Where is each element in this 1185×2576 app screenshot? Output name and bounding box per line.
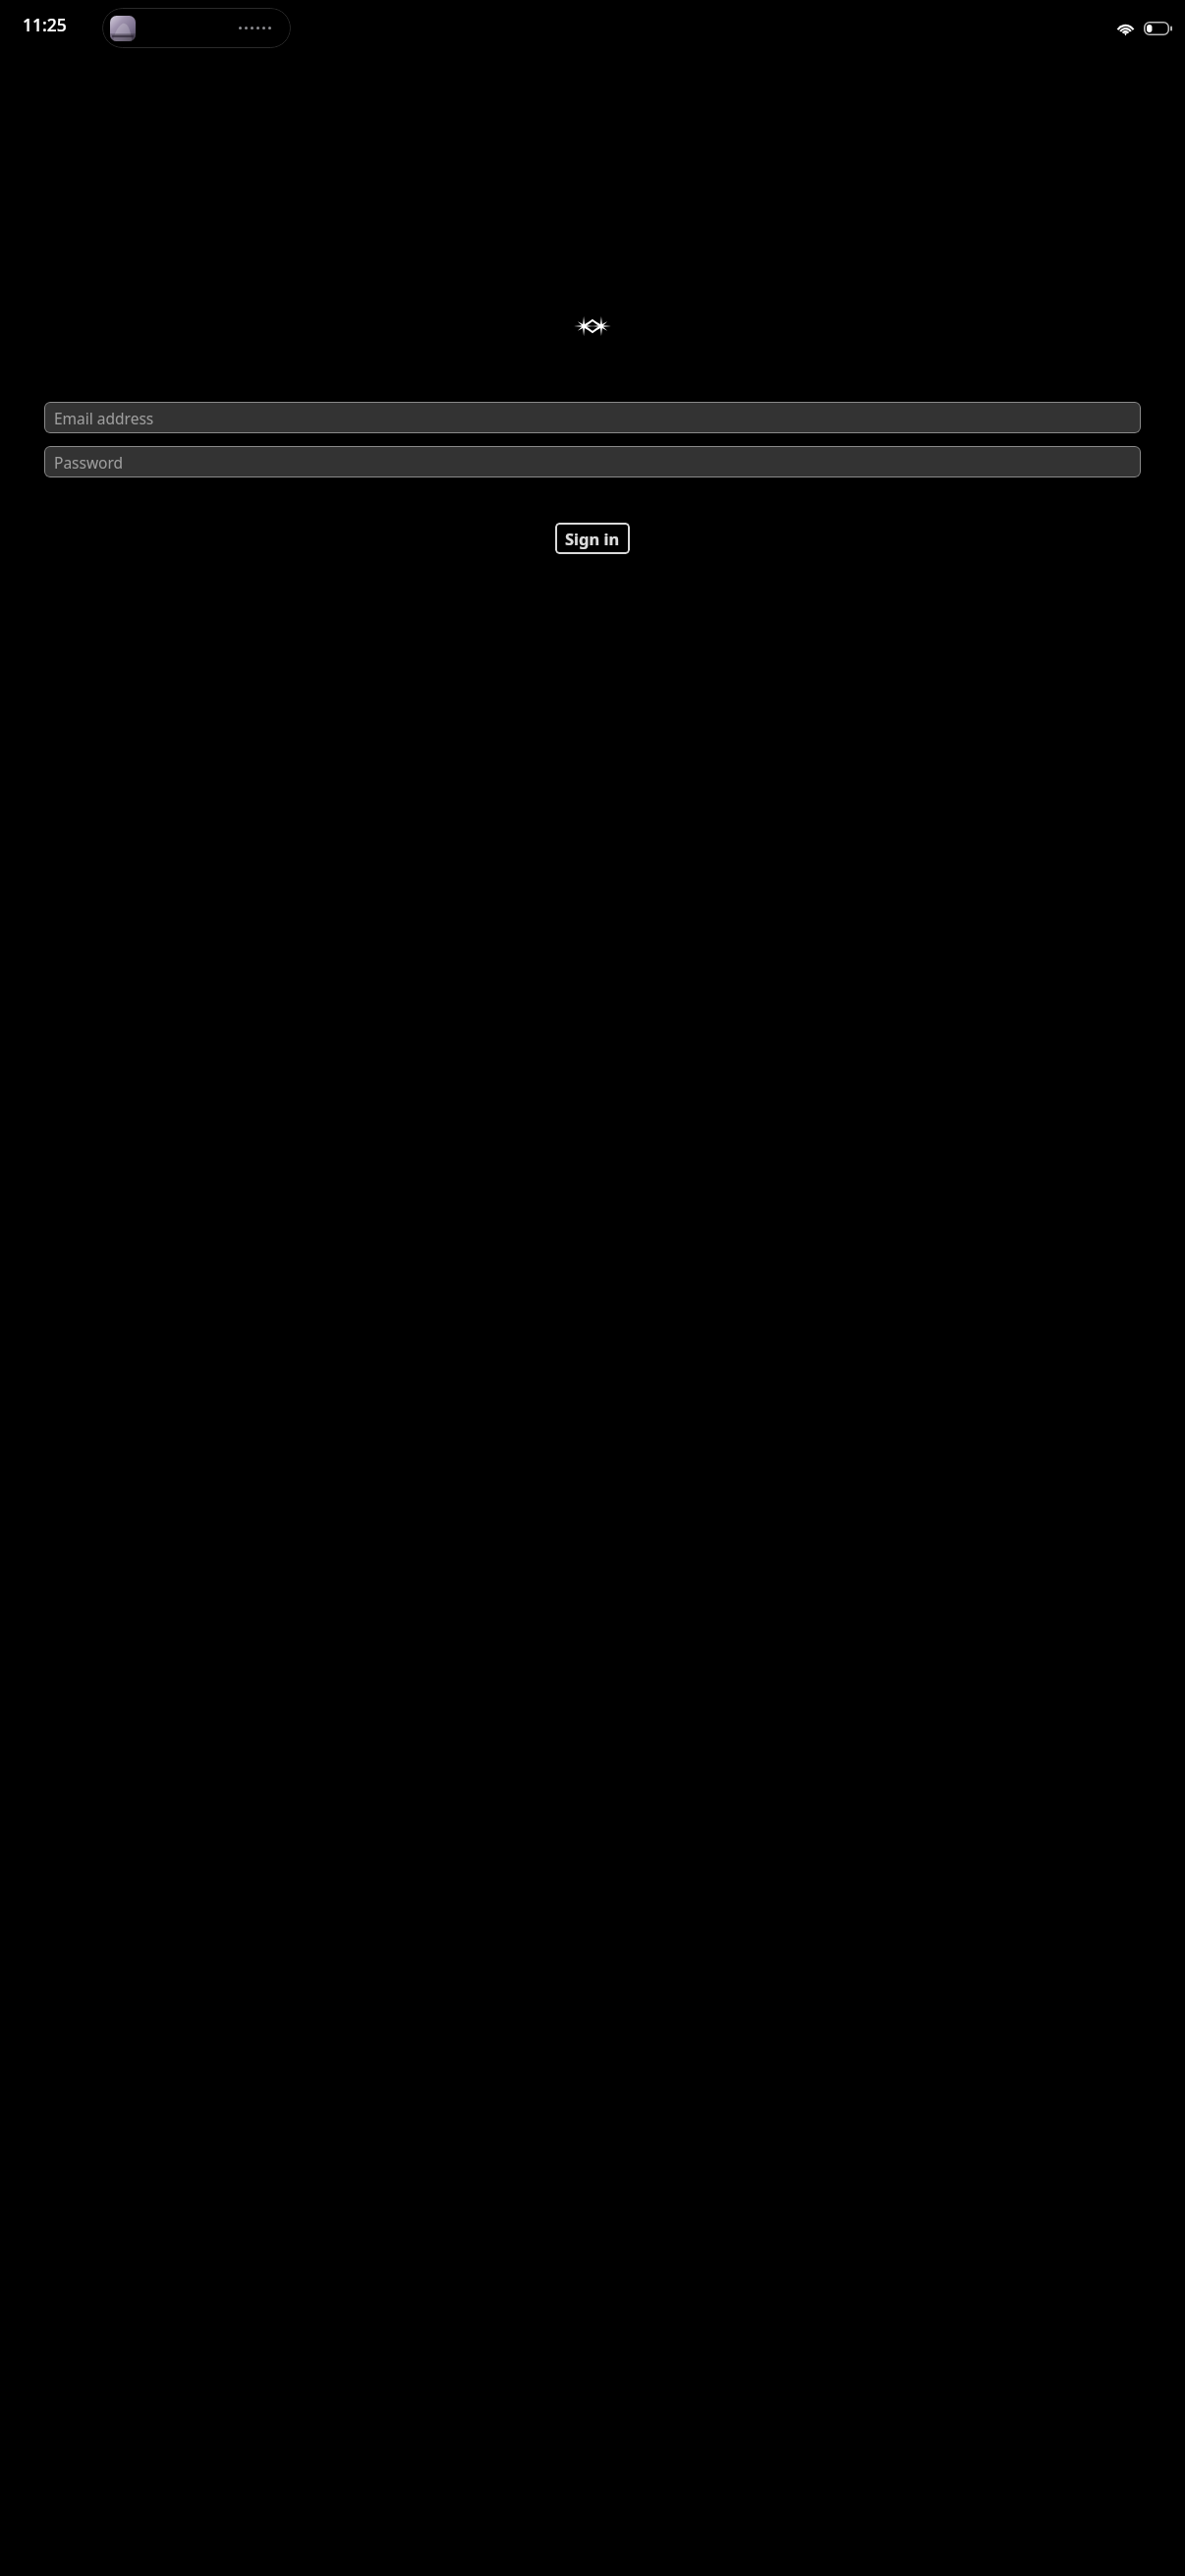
staticText: Sign in [565, 528, 620, 549]
staticText: Email address [54, 408, 154, 428]
staticText: Password [54, 452, 124, 473]
staticText: 11:25 [23, 13, 67, 36]
button[interactable]: Sign in [555, 523, 630, 554]
button[interactable]: Password [44, 446, 1141, 477]
button[interactable]: Now playing [102, 8, 291, 48]
button[interactable]: Email address [44, 402, 1141, 433]
